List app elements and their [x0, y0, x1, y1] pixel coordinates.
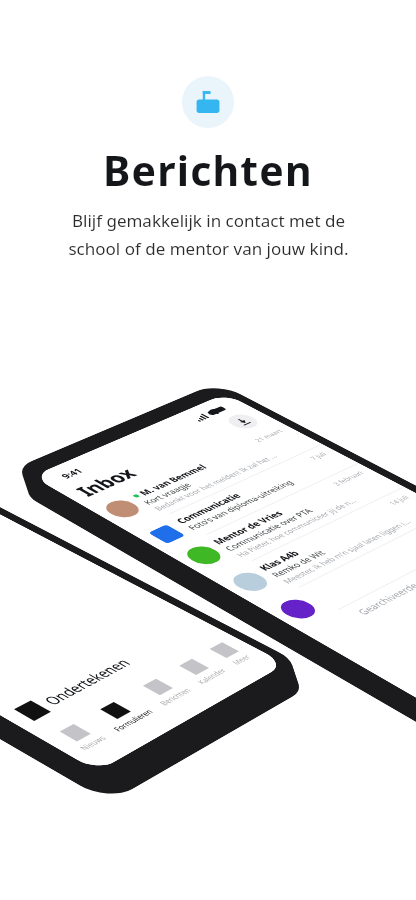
button[interactable]: Kalender: [173, 656, 228, 686]
staticText: Foto's van diploma-uitreiking: [184, 478, 296, 532]
staticText: M. van Bemmel: [135, 462, 210, 497]
staticText: Meester, ik heb m'n sjaal laten liggen i…: [279, 516, 416, 585]
staticText: Formulieren: [110, 707, 155, 733]
staticText: Mentor de Vries: [209, 508, 286, 546]
staticText: Bedankt voor het melden! Ik zal het er..…: [151, 452, 280, 512]
button[interactable]: Mentor de Vries: [166, 463, 404, 580]
staticText: 9:41: [57, 466, 85, 480]
staticText: Kalender: [194, 666, 228, 685]
staticText: Klas A4b: [255, 548, 302, 572]
staticText: Communicatie: [172, 491, 244, 525]
button[interactable]: M. van Bemmel: [86, 421, 323, 533]
button[interactable]: Nieuws: [56, 722, 109, 752]
button[interactable]: Meer: [208, 642, 253, 666]
staticText: Kort vraagje: [140, 481, 194, 506]
staticText: 21 maart: [252, 427, 285, 443]
staticText: Inbox: [69, 464, 143, 500]
staticText: Remko de Wit: [268, 548, 328, 579]
staticText: Blijf gemakkelijk in contact met de scho…: [68, 209, 349, 260]
button[interactable]: [260, 511, 416, 630]
staticText: Berichten: [156, 686, 193, 707]
staticText: Berichten: [103, 142, 313, 198]
staticText: Ha Pieter, hoe communiceer jij de nieuw.…: [233, 496, 360, 559]
button[interactable]: Communicatie: [130, 444, 359, 554]
button[interactable]: Berichten: [136, 675, 193, 707]
staticText: Ondertekenen: [38, 656, 135, 708]
staticText: 3 februari: [330, 469, 366, 487]
button[interactable]: Klas A4b: [212, 487, 416, 608]
button[interactable]: Formulieren: [89, 696, 155, 733]
staticText: Gearchiveerde gesprekken: [306, 535, 416, 642]
staticText: Communicatie over PTA: [221, 506, 316, 553]
staticText: Nieuws: [76, 733, 109, 752]
staticText: 14 juli: [386, 493, 412, 506]
button[interactable]: Archief: [223, 412, 263, 431]
staticText: 7 juli: [307, 450, 329, 461]
staticText: Meer: [229, 653, 253, 666]
